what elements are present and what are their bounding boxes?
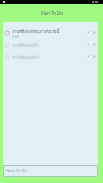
button[interactable]: Delete — [92, 54, 97, 59]
button[interactable]: Edit — [86, 54, 91, 59]
staticText: งานที่ยังไม่เสร็จ — [12, 42, 39, 48]
button[interactable]: Edit — [86, 42, 91, 47]
button[interactable]: Delete — [92, 30, 97, 35]
staticText: Plan To Do — [41, 10, 63, 16]
staticText: งานที่ยังไม่เสร็จ — [12, 54, 39, 60]
button[interactable]: Edit — [86, 30, 91, 35]
button[interactable]: งานที่ยังไม่เสร็จ — [3, 51, 98, 63]
staticText: 0:00 — [12, 34, 20, 39]
staticText: งานที่ต้องเตรียมภายในวันนี้ — [12, 28, 60, 34]
button[interactable]: Delete — [92, 42, 97, 47]
button[interactable]: New To Do — [3, 165, 98, 177]
staticText: New To Do — [6, 168, 28, 174]
button[interactable]: งานที่ยังไม่เสร็จ — [3, 39, 98, 51]
button[interactable]: งานที่ต้องเตรียมภายในวันนี้ — [3, 27, 98, 39]
